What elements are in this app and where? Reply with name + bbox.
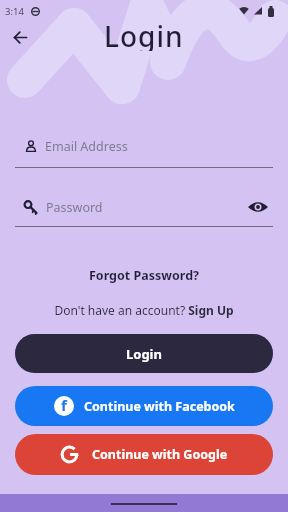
staticText: Continue with Google	[92, 446, 228, 463]
button[interactable]	[8, 25, 32, 49]
button[interactable]: Login	[15, 334, 273, 373]
button[interactable]: Email Address	[15, 131, 273, 168]
button[interactable]: Password	[15, 193, 273, 227]
staticText: Login	[104, 17, 184, 51]
staticText: Continue with Facebook	[84, 398, 235, 415]
button[interactable]: Don't have an account? Sign Up	[0, 302, 288, 318]
staticText: f	[61, 396, 67, 415]
staticText: Login	[126, 345, 162, 363]
staticText: Email Address	[45, 138, 128, 155]
staticText: Password	[46, 199, 103, 216]
staticText: 3:14	[5, 5, 24, 18]
button[interactable]: Forgot Password?	[0, 267, 288, 284]
button[interactable]: Continue with Google	[15, 434, 273, 475]
button[interactable]: f	[15, 386, 273, 426]
